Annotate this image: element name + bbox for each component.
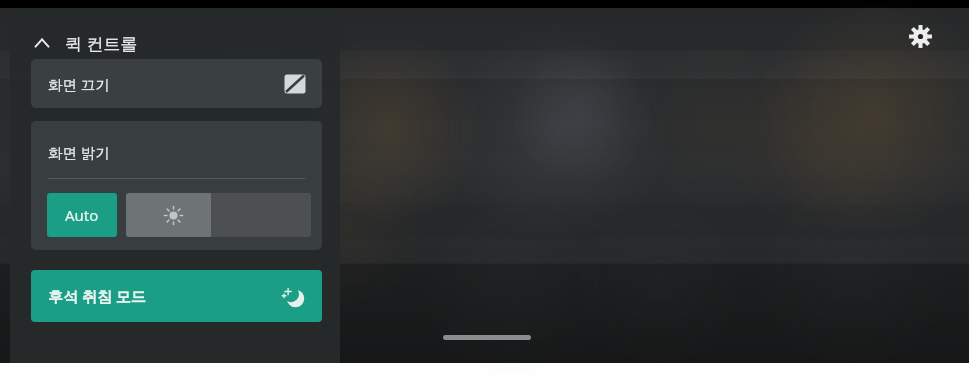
staticText: 화면 끄기	[48, 74, 110, 94]
button[interactable]: 화면 끄기	[31, 59, 322, 108]
staticText: 화면 밝기	[48, 142, 110, 162]
staticText: Auto	[65, 205, 99, 225]
button[interactable]: Settings	[899, 15, 941, 57]
button[interactable]: 후석 취침 모드	[31, 270, 322, 322]
button[interactable]: Collapse	[31, 22, 138, 64]
button[interactable]: Auto	[47, 193, 117, 237]
other: Collapse	[31, 32, 53, 54]
button[interactable]: Brightness	[126, 193, 311, 237]
staticText: 퀵 컨트롤	[65, 32, 138, 55]
staticText: 후석 취침 모드	[48, 286, 146, 306]
